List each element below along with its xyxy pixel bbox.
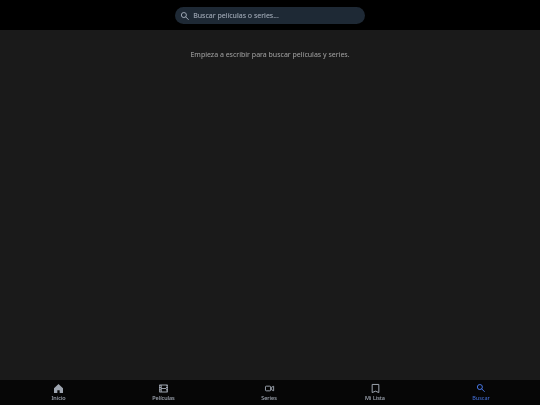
button[interactable]: Inicio	[6, 380, 111, 405]
staticText: Mi Lista	[365, 394, 385, 401]
button[interactable]: Mi Lista	[322, 380, 428, 405]
staticText: Inicio	[51, 394, 66, 401]
button[interactable]: Series	[216, 380, 322, 405]
staticText: Series	[261, 394, 277, 401]
staticText: Empieza a escribir para buscar películas…	[190, 50, 350, 60]
button[interactable]: Buscar	[428, 380, 534, 405]
staticText: Buscar	[472, 394, 490, 401]
staticText: Películas	[152, 394, 175, 401]
button[interactable]: Campo de búsqueda	[175, 7, 365, 24]
button[interactable]: Películas	[111, 380, 216, 405]
staticText: Buscar películas o series...	[193, 11, 279, 21]
